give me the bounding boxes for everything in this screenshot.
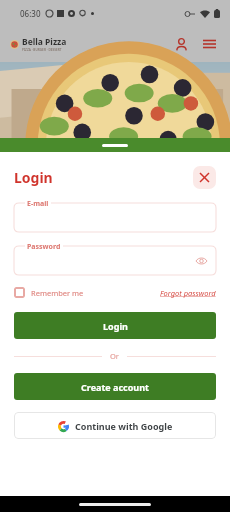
staticText: Login xyxy=(14,168,53,187)
button[interactable]: Bella Pizza xyxy=(10,36,67,52)
staticText: Password xyxy=(27,242,61,252)
button[interactable]: Login xyxy=(14,312,216,339)
button[interactable]: E-mail xyxy=(14,203,216,232)
staticText: Remember me xyxy=(31,288,84,298)
button[interactable]: Close xyxy=(193,166,216,189)
button[interactable]: Account xyxy=(170,33,192,55)
button[interactable]: Show password xyxy=(193,253,209,269)
button[interactable]: Remember me xyxy=(14,287,84,298)
staticText: Continue with Google xyxy=(75,420,173,432)
button[interactable]: Forgot password xyxy=(160,288,216,298)
staticText: PIZZA · BURGER · DESSERT xyxy=(22,48,62,52)
staticText: Login xyxy=(103,320,128,332)
staticText: E-mail xyxy=(27,199,49,209)
button[interactable]: Create account xyxy=(14,373,216,400)
button[interactable]: Continue with Google xyxy=(14,412,216,439)
staticText: Create account xyxy=(81,381,149,393)
staticText: Bella Pizza xyxy=(22,36,67,48)
button[interactable]: Menu xyxy=(198,33,220,55)
staticText: Forgot password xyxy=(160,288,216,298)
staticText: 06:30 xyxy=(20,8,41,19)
staticText: Or xyxy=(110,351,119,361)
button[interactable]: Password xyxy=(14,246,216,275)
